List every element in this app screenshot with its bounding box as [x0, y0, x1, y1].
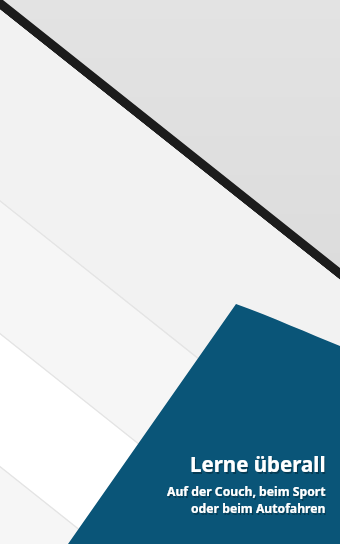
button[interactable]: Lerne überall promo screen — [0, 0, 340, 544]
